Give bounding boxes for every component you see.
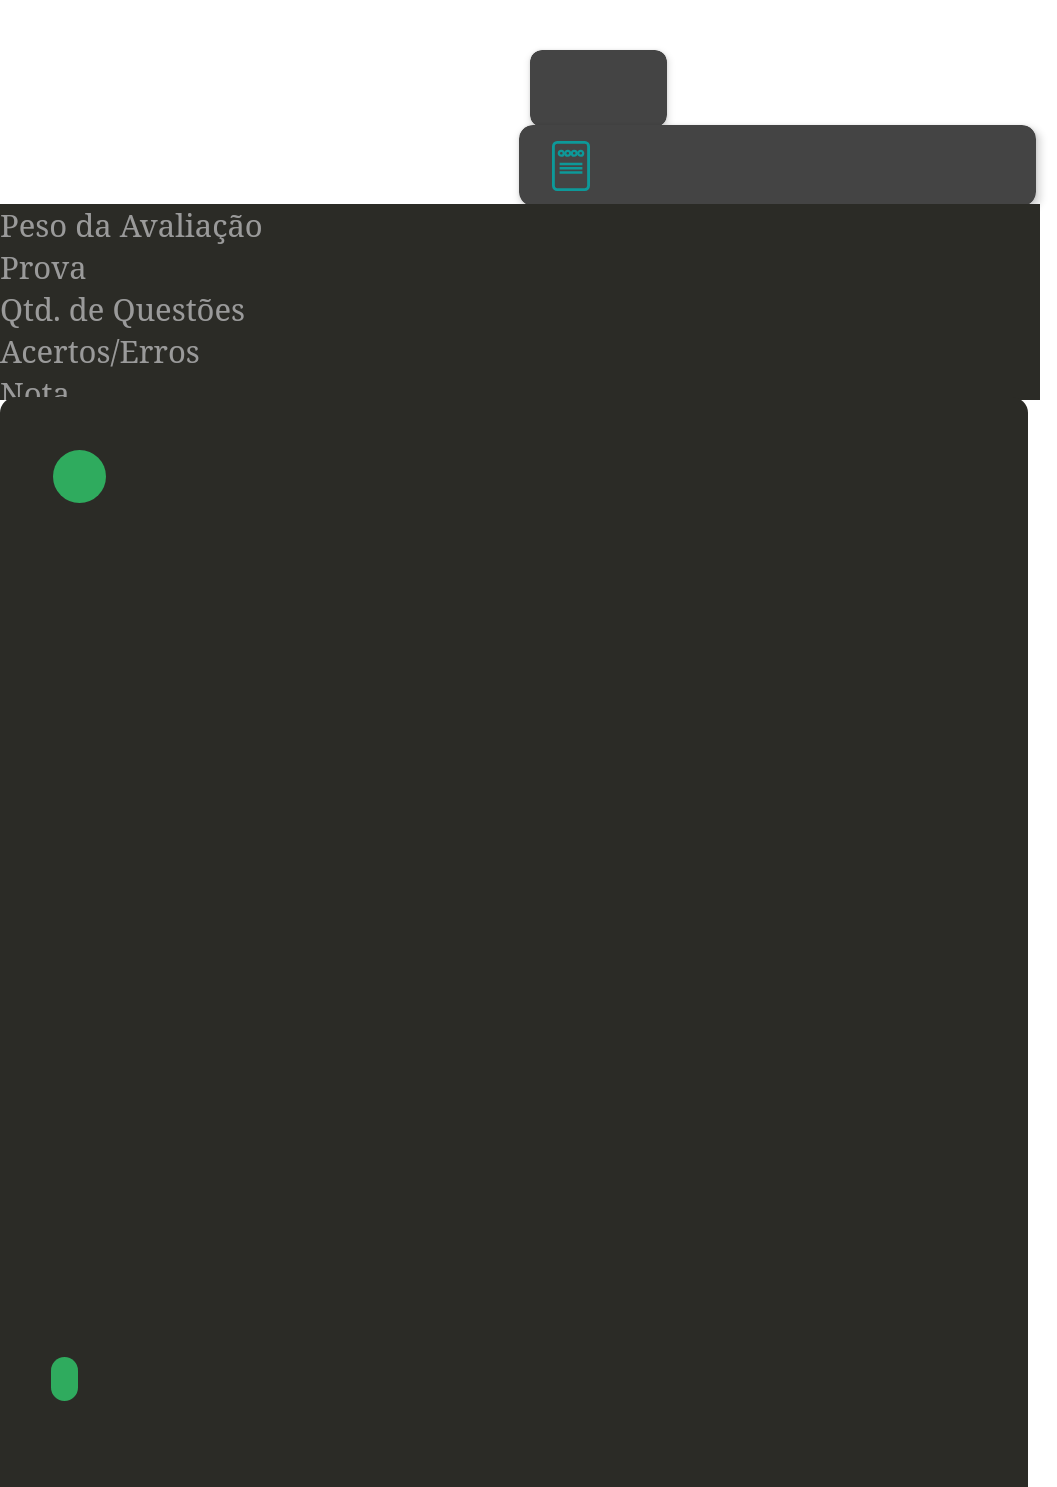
staticText: Qtd. de Questões: [0, 288, 246, 330]
button[interactable]: Notas: [519, 125, 1036, 206]
staticText: Peso da Avaliação: [0, 204, 263, 246]
staticText: Nota: [0, 372, 70, 400]
staticText: Prova: [0, 246, 87, 288]
button[interactable]: [53, 450, 106, 503]
button[interactable]: [51, 1357, 78, 1401]
button[interactable]: Notas: [552, 141, 590, 191]
button[interactable]: [530, 50, 667, 127]
staticText: Acertos/Erros: [0, 330, 200, 372]
